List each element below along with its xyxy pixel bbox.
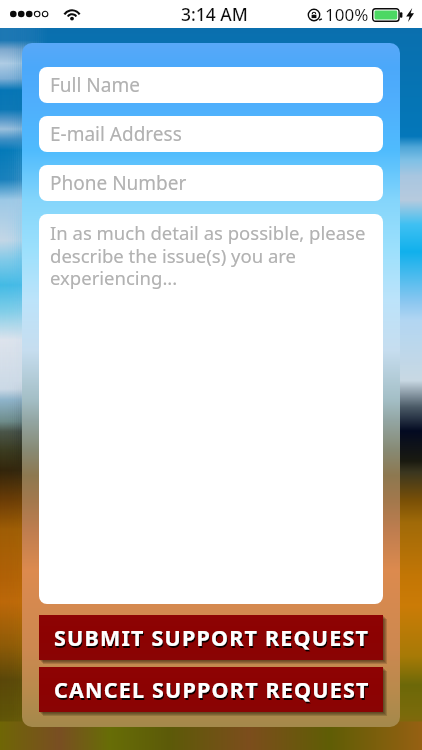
staticText: In as much detail as possible, please de… [50, 220, 379, 290]
button[interactable]: In as much detail as possible, please de… [39, 214, 383, 604]
button[interactable]: SUBMIT SUPPORT REQUEST [39, 615, 383, 660]
staticText: Full Name [50, 72, 140, 98]
button[interactable]: CANCEL SUPPORT REQUEST [39, 667, 383, 712]
button[interactable]: Full Name [39, 67, 383, 103]
button[interactable]: Phone Number [39, 165, 383, 201]
staticText: Phone Number [50, 170, 187, 196]
staticText: SUBMIT SUPPORT REQUEST [55, 625, 371, 654]
button[interactable]: E-mail Address [39, 116, 383, 152]
staticText: CANCEL SUPPORT REQUEST [54, 675, 370, 704]
staticText: 3:14 AM [181, 2, 248, 26]
staticText: E-mail Address [50, 121, 182, 147]
staticText: CANCEL SUPPORT REQUEST [55, 677, 371, 706]
staticText: 100% [325, 3, 369, 26]
staticText: SUBMIT SUPPORT REQUEST [54, 623, 370, 652]
